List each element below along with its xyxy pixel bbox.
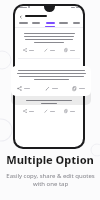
button[interactable]: Share [22,108,35,114]
button[interactable]: Copy [63,47,76,53]
button[interactable]: Share [18,30,80,56]
button[interactable]: Share [16,85,31,92]
staticText: Multiple Option [6,152,94,167]
button[interactable] [72,22,81,26]
button[interactable]: Edit [43,108,56,114]
button[interactable]: Copy [63,108,76,114]
button[interactable] [31,22,41,26]
button[interactable]: Edit [44,85,59,92]
button[interactable]: Edit [43,47,56,53]
button[interactable]: Share [11,66,91,96]
button[interactable] [44,22,56,27]
button[interactable]: Share [22,47,35,53]
button[interactable]: Share [18,97,80,117]
button[interactable]: Copy [71,85,86,92]
staticText: Easily copy, share & edit quotes with on… [6,172,95,188]
button[interactable] [58,22,69,26]
button[interactable]: Back [18,14,23,19]
button[interactable] [18,22,29,26]
